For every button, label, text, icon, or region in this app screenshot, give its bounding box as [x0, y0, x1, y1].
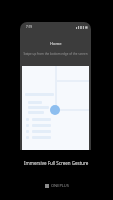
- staticText: 7:19: [26, 25, 32, 29]
- staticText: Swipe up from the bottom edge of the scr…: [20, 52, 91, 56]
- staticText: ONEPLUS: [51, 183, 69, 188]
- staticText: Immersive Full Screen Gesture: [24, 160, 89, 166]
- staticText: Home: [50, 41, 62, 46]
